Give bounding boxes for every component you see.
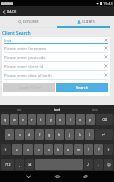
- button[interactable]: Clear: [104, 46, 108, 50]
- staticText: w: [13, 117, 16, 122]
- staticText: l: [89, 132, 90, 137]
- staticText: t: [40, 117, 42, 122]
- staticText: ?: [98, 147, 100, 152]
- button[interactable]: ⇧: [104, 144, 113, 155]
- staticText: ⌫: [102, 118, 108, 122]
- button[interactable]: z: [12, 144, 22, 155]
- staticText: s: [19, 132, 21, 137]
- button[interactable]: o: [76, 114, 85, 125]
- button[interactable]: ⌫: [96, 114, 113, 125]
- staticText: h: [58, 132, 61, 137]
- button[interactable]: ↵: [95, 129, 113, 140]
- staticText: ⌘: [28, 163, 32, 167]
- button[interactable]: k: [75, 129, 84, 140]
- button[interactable]: Clear: [104, 73, 108, 77]
- button[interactable]: h: [55, 129, 64, 140]
- button[interactable]: t: [37, 114, 45, 125]
- button[interactable]: v: [44, 144, 53, 155]
- staticText: invt: [54, 107, 60, 112]
- staticText: z: [16, 147, 18, 152]
- staticText: CLIENTS: [82, 20, 95, 24]
- button[interactable]: inst: [76, 105, 114, 113]
- button[interactable]: l: [85, 129, 94, 140]
- button[interactable]: ⇧: [1, 144, 11, 155]
- staticText: EXPLORER: [23, 20, 39, 24]
- button[interactable]: d: [25, 129, 34, 140]
- staticText: Please enter forename: [4, 46, 104, 51]
- button[interactable]: f: [35, 129, 44, 140]
- button[interactable]: Home: [53, 172, 62, 181]
- staticText: ☺: [107, 163, 111, 167]
- button[interactable]: CLIENTS: [57, 16, 114, 28]
- staticText: e: [22, 117, 25, 122]
- staticText: inst: [92, 107, 98, 112]
- button[interactable]: c: [34, 144, 43, 155]
- staticText: p: [89, 117, 92, 122]
- staticText: c: [38, 147, 40, 152]
- button[interactable]: ♪: [84, 159, 93, 170]
- button[interactable]: Hide keyboard: [24, 172, 33, 181]
- button[interactable]: q: [1, 114, 9, 125]
- staticText: f: [39, 132, 41, 137]
- button[interactable]: p: [86, 114, 95, 125]
- staticText: m: [77, 147, 81, 152]
- button[interactable]: Recent apps: [81, 172, 90, 181]
- staticText: ,: [19, 162, 20, 167]
- staticText: Search: [76, 85, 89, 90]
- staticText: b: [57, 147, 60, 152]
- staticText: .: [98, 162, 99, 167]
- staticText: q: [4, 117, 7, 122]
- staticText: j: [69, 132, 70, 137]
- staticText: ♪: [87, 163, 90, 167]
- button[interactable]: r: [28, 114, 36, 125]
- staticText: !: [88, 147, 89, 152]
- staticText: i: [70, 117, 71, 122]
- button[interactable]: ⌘: [25, 159, 34, 170]
- staticText: k: [79, 132, 81, 137]
- button[interactable]: u: [56, 114, 65, 125]
- button[interactable]: Clear: [104, 38, 108, 42]
- button[interactable]: !: [84, 144, 93, 155]
- button[interactable]: a: [5, 129, 14, 140]
- staticText: o: [79, 117, 82, 122]
- staticText: ⇧: [4, 148, 8, 152]
- button[interactable]: i: [66, 114, 75, 125]
- button[interactable]: ?12: [1, 159, 14, 170]
- button[interactable]: e: [19, 114, 27, 125]
- staticText: Please enter client id: [4, 64, 104, 69]
- staticText: u: [59, 117, 62, 122]
- button[interactable]: Clear: [104, 64, 108, 68]
- button[interactable]: Clear: [104, 55, 108, 59]
- staticText: y: [50, 117, 52, 122]
- button[interactable]: ☺: [104, 159, 113, 170]
- button[interactable]: Create Client: [3, 83, 55, 92]
- button[interactable]: EXPLORER: [0, 16, 57, 28]
- button[interactable]: m: [74, 144, 83, 155]
- button[interactable]: .: [94, 159, 103, 170]
- staticText: n: [67, 147, 70, 152]
- button[interactable]: int: [0, 105, 38, 113]
- button[interactable]: b: [54, 144, 63, 155]
- staticText: Invt: [4, 38, 104, 43]
- button[interactable]: x: [23, 144, 33, 155]
- button[interactable]: Search: [56, 83, 108, 92]
- button[interactable]: g: [45, 129, 54, 140]
- button[interactable]: n: [64, 144, 73, 155]
- button[interactable]: j: [65, 129, 74, 140]
- button[interactable]: BACK: [0, 7, 20, 16]
- button[interactable]: w: [10, 114, 18, 125]
- button[interactable]: invt: [38, 105, 76, 113]
- button[interactable]: s: [15, 129, 24, 140]
- staticText: Please enter date of birth: [4, 73, 104, 78]
- staticText: ?12: [5, 162, 11, 167]
- button[interactable]: y: [46, 114, 55, 125]
- staticText: BACK: [7, 9, 17, 14]
- button[interactable]: ,: [15, 159, 24, 170]
- staticText: r: [31, 117, 33, 122]
- staticText: a: [8, 132, 11, 137]
- staticText: ↵: [102, 133, 106, 137]
- button[interactable]: ?: [94, 144, 103, 155]
- staticText: d: [28, 132, 31, 137]
- staticText: v: [48, 147, 50, 152]
